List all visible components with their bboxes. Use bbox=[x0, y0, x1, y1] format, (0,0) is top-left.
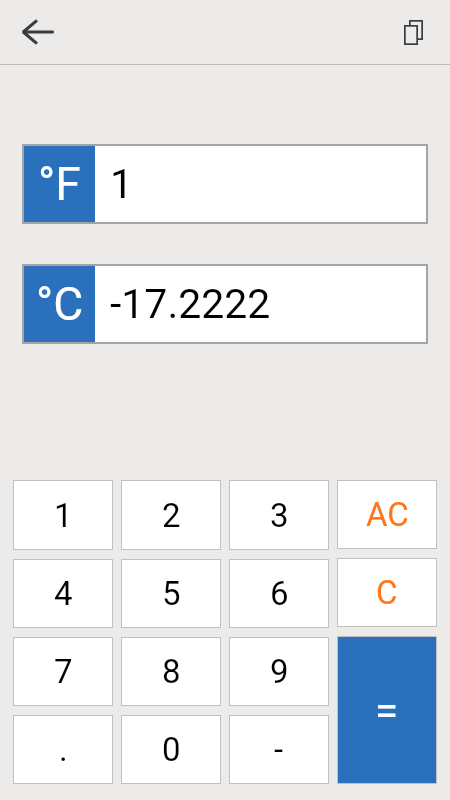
staticText: °C bbox=[36, 277, 84, 331]
staticText: = bbox=[375, 686, 399, 735]
button[interactable]: C bbox=[338, 559, 436, 626]
button[interactable]: 5 bbox=[122, 560, 220, 627]
button[interactable]: °F bbox=[24, 146, 426, 222]
staticText: 0 bbox=[162, 730, 181, 769]
button[interactable]: 7 bbox=[14, 638, 112, 705]
staticText: 1 bbox=[54, 496, 73, 535]
staticText: . bbox=[59, 730, 68, 769]
staticText: 9 bbox=[270, 652, 289, 691]
staticText: 6 bbox=[270, 574, 289, 613]
staticText: - bbox=[274, 730, 284, 769]
button[interactable]: 4 bbox=[14, 560, 112, 627]
staticText: 3 bbox=[270, 496, 289, 535]
button[interactable]: = bbox=[338, 637, 436, 783]
button[interactable]: 9 bbox=[230, 638, 328, 705]
button[interactable]: °C bbox=[24, 266, 426, 342]
button[interactable]: 0 bbox=[122, 716, 220, 783]
staticText: 1 bbox=[110, 160, 134, 208]
button[interactable]: Back bbox=[14, 8, 62, 56]
staticText: 2 bbox=[162, 496, 181, 535]
staticText: C bbox=[376, 573, 398, 612]
button[interactable]: 2 bbox=[122, 481, 220, 549]
button[interactable]: 1 bbox=[14, 481, 112, 549]
button[interactable]: - bbox=[230, 716, 328, 783]
button[interactable]: AC bbox=[338, 481, 436, 548]
button[interactable]: 3 bbox=[230, 481, 328, 549]
button[interactable]: 8 bbox=[122, 638, 220, 705]
staticText: 5 bbox=[162, 574, 181, 613]
button[interactable]: . bbox=[14, 716, 112, 783]
staticText: 7 bbox=[54, 652, 73, 691]
staticText: -17.2222 bbox=[110, 280, 271, 328]
button[interactable]: Copy bbox=[389, 8, 437, 56]
staticText: °F bbox=[38, 157, 81, 211]
staticText: AC bbox=[366, 495, 409, 534]
staticText: 8 bbox=[162, 652, 181, 691]
button[interactable]: 6 bbox=[230, 560, 328, 627]
staticText: 4 bbox=[54, 574, 73, 613]
